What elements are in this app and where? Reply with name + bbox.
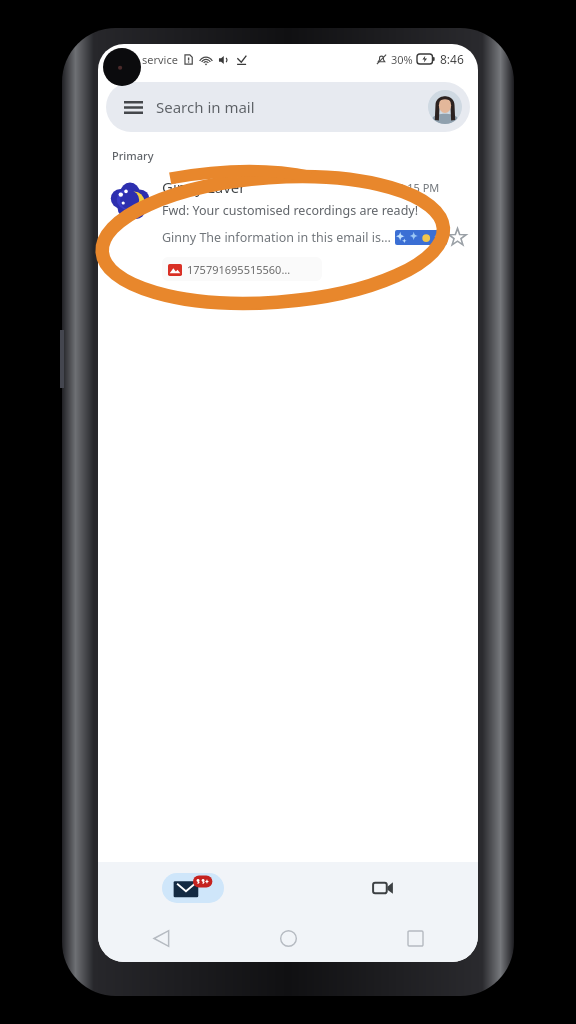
staticText: 2:15 PM: [398, 180, 440, 195]
staticText: 175791695515560…: [187, 262, 291, 277]
button[interactable]: Star: [447, 224, 468, 250]
button[interactable]: 175791695515560…: [162, 257, 322, 281]
button[interactable]: Account: [428, 90, 462, 124]
button[interactable]: Mail, 99+ unread: [162, 873, 224, 903]
staticText: Fwd: Your customised recordings are read…: [162, 202, 419, 219]
button[interactable]: Ginny Laver: [98, 175, 478, 287]
staticText: Ginny The information in this email is…: [162, 229, 391, 246]
staticText: 8:46: [440, 51, 464, 67]
button[interactable]: Open navigation menu: [106, 82, 470, 132]
button[interactable]: Back: [141, 918, 181, 958]
button[interactable]: Home: [268, 918, 308, 958]
staticText: Ginny Laver: [162, 177, 398, 197]
staticText: 30%: [391, 52, 413, 67]
staticText: service: [142, 52, 178, 67]
staticText: Primary: [112, 148, 154, 163]
staticText: Search in mail: [156, 97, 255, 117]
button[interactable]: Meet: [352, 873, 414, 903]
button[interactable]: Recent apps: [395, 918, 435, 958]
button[interactable]: Open navigation menu: [120, 94, 146, 120]
